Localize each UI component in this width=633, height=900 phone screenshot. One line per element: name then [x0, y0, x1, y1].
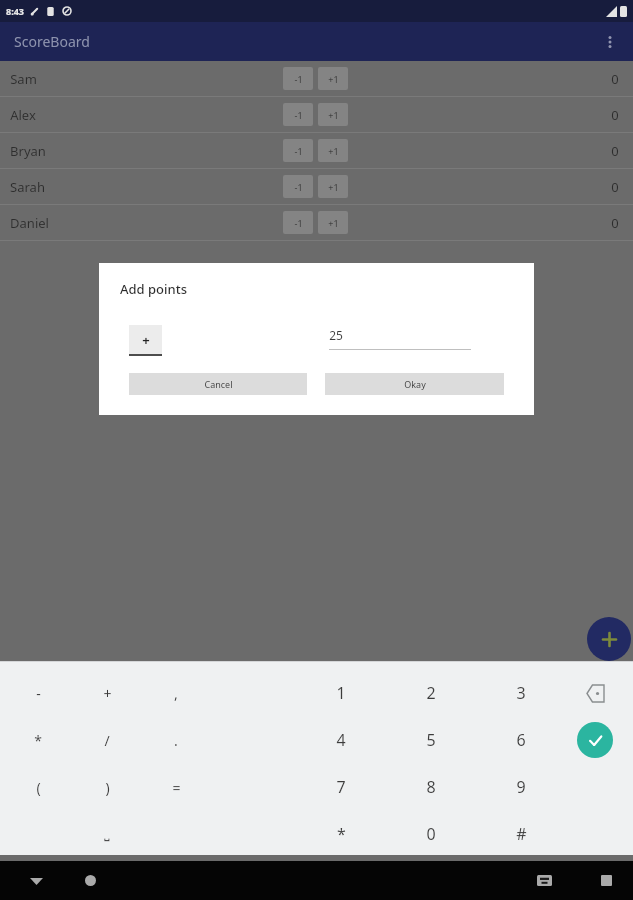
button[interactable]: -1 — [283, 139, 313, 162]
staticText: ) — [105, 778, 110, 797]
staticText: +1 — [328, 109, 339, 121]
staticText: -1 — [294, 181, 303, 193]
staticText: 25 — [329, 327, 343, 343]
button[interactable]: +1 — [318, 139, 348, 162]
staticText: / — [104, 731, 110, 750]
button[interactable]: Home — [70, 861, 110, 900]
button[interactable]: * — [317, 814, 365, 854]
button[interactable]: # — [497, 814, 545, 854]
button[interactable]: 2 — [407, 673, 455, 713]
staticText: Add points — [120, 280, 187, 298]
button[interactable]: Back — [16, 861, 56, 900]
staticText: +1 — [328, 181, 339, 193]
button[interactable]: 5 — [407, 720, 455, 760]
staticText: Cancel — [204, 378, 233, 390]
staticText: ⎵ — [104, 827, 110, 841]
staticText: +1 — [328, 217, 339, 229]
staticText: -1 — [294, 109, 303, 121]
button[interactable]: +1 — [318, 103, 348, 126]
staticText: , — [174, 684, 178, 703]
button[interactable]: * — [14, 720, 62, 760]
staticText: + — [142, 331, 150, 349]
button[interactable]: Add player — [587, 617, 631, 661]
staticText: Daniel — [10, 214, 49, 232]
staticText: . — [174, 731, 178, 750]
staticText: 7 — [336, 776, 346, 798]
button[interactable]: -1 — [283, 103, 313, 126]
button[interactable]: + — [83, 673, 131, 713]
button[interactable]: -1 — [283, 211, 313, 234]
button[interactable]: -1 — [283, 175, 313, 198]
button[interactable]: Alex — [0, 97, 633, 132]
staticText: * — [34, 731, 42, 750]
staticText: 0 — [611, 178, 619, 196]
staticText: 4 — [336, 729, 346, 751]
button[interactable]: 9 — [497, 767, 545, 807]
button[interactable]: Backspace — [572, 673, 618, 713]
staticText: Sarah — [10, 178, 45, 196]
staticText: ( — [36, 778, 41, 797]
button[interactable]: Okay — [325, 373, 504, 395]
button[interactable]: 8 — [407, 767, 455, 807]
staticText: 6 — [516, 729, 526, 751]
button[interactable]: / — [83, 720, 131, 760]
button[interactable]: 6 — [497, 720, 545, 760]
button[interactable]: More options — [593, 25, 627, 59]
button[interactable]: +1 — [318, 175, 348, 198]
button[interactable]: ⎵ — [83, 814, 131, 854]
button[interactable]: Enter — [577, 722, 613, 758]
staticText: Sam — [10, 70, 37, 88]
staticText: 8:43 — [6, 5, 24, 17]
button[interactable]: 7 — [317, 767, 365, 807]
button[interactable]: Sam — [0, 61, 633, 96]
staticText: 5 — [426, 729, 436, 751]
staticText: -1 — [294, 73, 303, 85]
staticText: ScoreBoard — [14, 32, 90, 51]
button[interactable]: -1 — [283, 67, 313, 90]
staticText: * — [337, 823, 346, 845]
staticText: = — [172, 778, 181, 797]
button[interactable]: 1 — [317, 673, 365, 713]
staticText: 1 — [336, 682, 346, 704]
button[interactable]: ( — [14, 767, 62, 807]
staticText: 2 — [426, 682, 436, 704]
button[interactable]: Switch keyboard — [524, 861, 564, 900]
button[interactable]: 0 — [407, 814, 455, 854]
button[interactable]: , — [152, 673, 200, 713]
staticText: 8 — [426, 776, 436, 798]
staticText: # — [516, 823, 527, 845]
staticText: +1 — [328, 73, 339, 85]
staticText: 0 — [611, 70, 619, 88]
button[interactable]: Recent apps — [586, 861, 626, 900]
button[interactable]: 4 — [317, 720, 365, 760]
staticText: Alex — [10, 106, 36, 124]
button[interactable]: Sarah — [0, 169, 633, 204]
staticText: -1 — [294, 217, 303, 229]
staticText: +1 — [328, 145, 339, 157]
button[interactable]: Bryan — [0, 133, 633, 168]
staticText: - — [36, 684, 41, 703]
button[interactable]: + — [129, 325, 162, 354]
staticText: 0 — [611, 142, 619, 160]
button[interactable]: Daniel — [0, 205, 633, 240]
button[interactable]: = — [152, 767, 200, 807]
button[interactable]: Cancel — [129, 373, 307, 395]
button[interactable]: . — [152, 720, 200, 760]
staticText: 3 — [516, 682, 526, 704]
staticText: 9 — [516, 776, 526, 798]
button[interactable]: +1 — [318, 67, 348, 90]
staticText: 0 — [611, 214, 619, 232]
staticText: 0 — [426, 823, 436, 845]
button[interactable]: 3 — [497, 673, 545, 713]
staticText: + — [103, 684, 112, 703]
staticText: 0 — [611, 106, 619, 124]
button[interactable]: +1 — [318, 211, 348, 234]
staticText: -1 — [294, 145, 303, 157]
button[interactable]: - — [14, 673, 62, 713]
staticText: Okay — [404, 378, 426, 390]
staticText: Bryan — [10, 142, 46, 160]
button[interactable]: ) — [83, 767, 131, 807]
